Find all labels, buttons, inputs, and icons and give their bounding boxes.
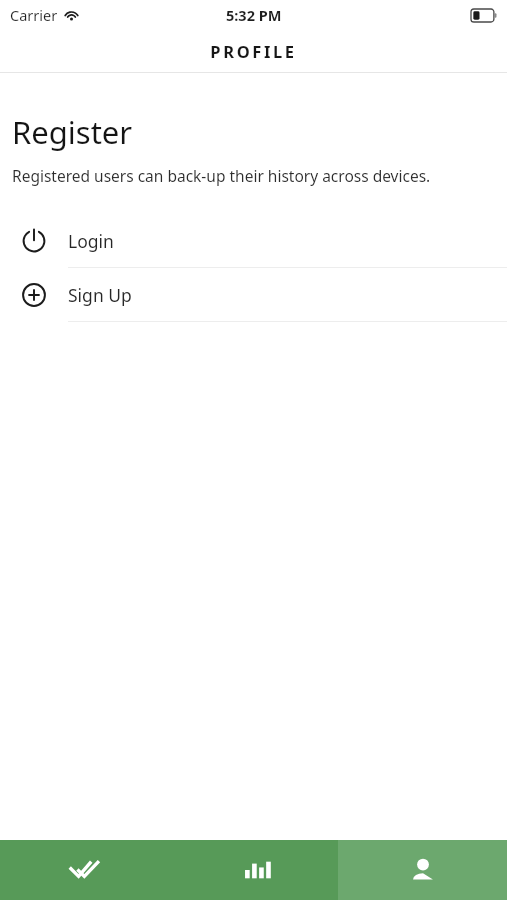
button[interactable]: Sign Up — [0, 268, 507, 322]
staticText: Registered users can back-up their histo… — [12, 165, 431, 186]
staticText: Register — [12, 111, 133, 153]
staticText: Login — [68, 229, 114, 253]
staticText: PROFILE — [210, 40, 297, 62]
button[interactable]: Profile — [338, 840, 507, 900]
button[interactable]: Statistics — [169, 840, 338, 900]
staticText: Sign Up — [68, 283, 132, 307]
button[interactable]: Login — [0, 214, 507, 268]
staticText: 5:32 PM — [226, 5, 282, 25]
staticText: Carrier — [10, 5, 58, 25]
button[interactable]: Tasks — [0, 840, 169, 900]
